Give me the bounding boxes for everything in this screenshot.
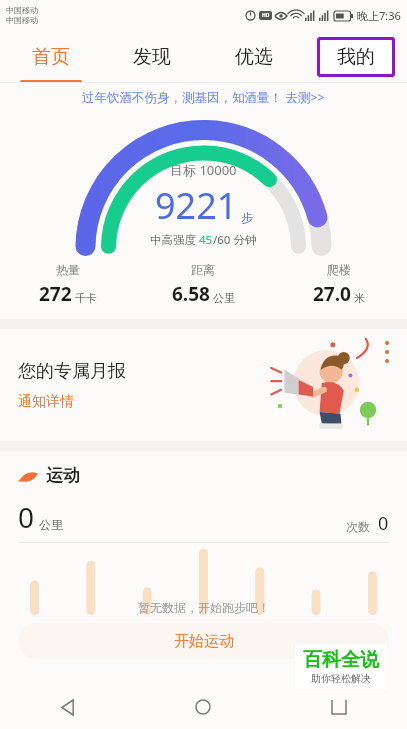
staticText: 助你轻松解决: [311, 672, 371, 685]
button[interactable]: 过年饮酒不伤身，测基因，知酒量！ 去测>>: [0, 83, 407, 111]
staticText: 发现: [133, 45, 171, 69]
button[interactable]: 您的专属月报: [0, 329, 407, 441]
button[interactable]: 热量: [0, 262, 135, 307]
staticText: 45: [199, 232, 213, 248]
staticText: 6.58: [172, 281, 210, 307]
staticText: 距离: [191, 262, 215, 277]
staticText: 爬楼: [327, 262, 351, 277]
staticText: 百科全说: [303, 648, 379, 672]
staticText: 目标 10000: [170, 161, 237, 179]
button[interactable]: Home: [135, 685, 271, 729]
button[interactable]: 距离: [135, 262, 271, 307]
button[interactable]: Back: [0, 685, 135, 729]
button[interactable]: Recent apps: [271, 685, 407, 729]
staticText: 0: [18, 498, 35, 536]
staticText: 过年饮酒不伤身，测基因，知酒量！ 去测>>: [82, 89, 325, 106]
button[interactable]: 首页: [0, 30, 101, 83]
staticText: 热量: [56, 262, 80, 277]
staticText: HD: [262, 12, 270, 19]
staticText: 优选: [235, 45, 273, 69]
staticText: 通知详情: [18, 393, 74, 411]
staticText: 您的专属月报: [18, 360, 126, 383]
button[interactable]: More options: [377, 341, 397, 371]
button[interactable]: 发现: [101, 30, 203, 83]
staticText: 中高强度: [150, 232, 199, 248]
staticText: 中国移动: [6, 15, 38, 25]
staticText: /60 分钟: [213, 232, 257, 248]
staticText: 27.0: [313, 281, 351, 307]
staticText: 运动: [46, 465, 80, 486]
staticText: 272: [39, 281, 72, 307]
staticText: 公里: [39, 517, 63, 532]
button[interactable]: 我的: [305, 30, 407, 83]
staticText: 千卡: [75, 291, 97, 305]
staticText: 晚上7:36: [357, 8, 401, 23]
staticText: 暂无数据，开始跑步吧！: [138, 600, 270, 615]
staticText: 次数: [346, 519, 370, 534]
staticText: 公里: [213, 291, 235, 305]
staticText: 开始运动: [174, 632, 234, 651]
button[interactable]: 运动: [18, 465, 407, 486]
staticText: 步: [241, 210, 253, 225]
staticText: 我的: [337, 45, 375, 69]
staticText: 米: [354, 291, 365, 305]
button[interactable]: 优选: [203, 30, 305, 83]
staticText: 首页: [32, 45, 70, 69]
button[interactable]: 爬楼: [271, 262, 407, 307]
staticText: 9221: [155, 181, 238, 230]
staticText: 0: [378, 511, 389, 536]
button[interactable]: 开始运动: [18, 623, 389, 659]
staticText: 中国移动: [6, 5, 38, 15]
